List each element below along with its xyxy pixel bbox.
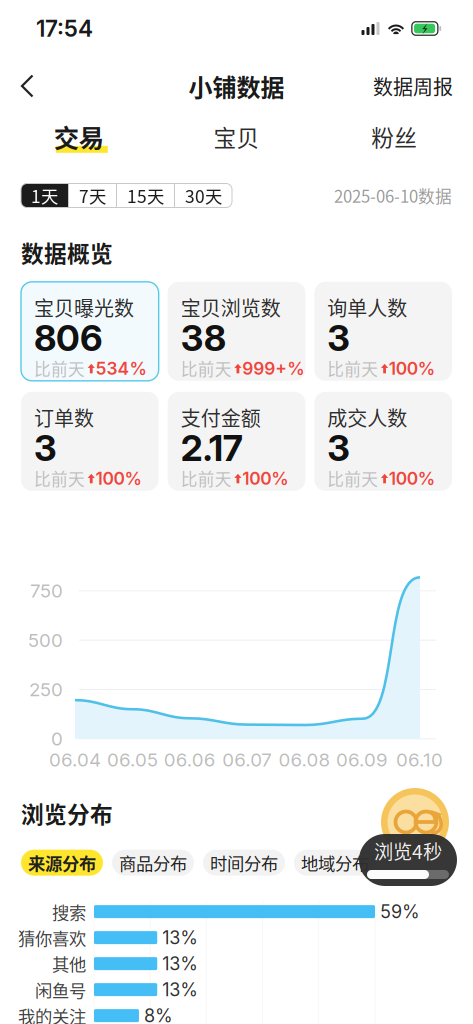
staticText: 13% (162, 953, 198, 975)
staticText: 13% (162, 927, 198, 949)
staticText: 小铺数据 (188, 69, 284, 103)
staticText: 100% (242, 468, 288, 489)
staticText: 06.09 (336, 748, 388, 771)
staticText: 534% (95, 358, 146, 379)
button[interactable]: 7天 (69, 183, 116, 207)
staticText: 询单人数 (327, 293, 407, 322)
button[interactable]: 返回 (0, 65, 51, 107)
staticText: 17:54 (36, 15, 93, 42)
staticText: 06.04 (49, 748, 101, 771)
staticText: 浏览分布 (21, 797, 113, 830)
button[interactable]: 15天 (117, 183, 174, 207)
staticText: 我的关注 (18, 1003, 86, 1024)
staticText: 宝贝浏览数 (181, 293, 281, 322)
staticText: 06.05 (107, 748, 158, 771)
staticText: 2025-06-10数据 (334, 183, 452, 207)
button[interactable]: 地域分布 (294, 850, 376, 876)
staticText: 成交人数 (327, 403, 407, 432)
staticText: 06.07 (222, 748, 272, 771)
staticText: 商品分布 (119, 850, 187, 875)
staticText: 1天 (31, 183, 58, 208)
staticText: 100% (389, 468, 435, 489)
staticText: 支付金额 (181, 403, 261, 432)
staticText: 比前天 (181, 466, 232, 490)
button[interactable]: 1天 (21, 183, 68, 207)
button[interactable]: 粉丝 (315, 115, 473, 173)
staticText: 来源分布 (28, 850, 96, 875)
button[interactable]: 商品分布 (112, 850, 194, 876)
staticText: 宝贝 (213, 120, 259, 153)
button[interactable]: 时间分布 (203, 850, 285, 876)
staticText: 806 (34, 316, 103, 360)
staticText: 订单数 (34, 403, 94, 432)
staticText: 搜索 (52, 899, 86, 924)
staticText: 数据周报 (373, 71, 453, 100)
staticText: 地域分布 (301, 850, 369, 875)
button[interactable]: 订单数 (21, 392, 159, 491)
staticText: 浏览4秒 (374, 836, 442, 864)
staticText: 3 (327, 426, 350, 470)
button[interactable]: 数据周报 (361, 61, 473, 110)
staticText: 0 (51, 727, 63, 750)
staticText: 7天 (79, 183, 106, 208)
staticText: 其他 (52, 951, 86, 976)
button[interactable]: 宝贝浏览数 (168, 282, 305, 381)
staticText: 3 (34, 426, 57, 470)
button[interactable]: 30天 (175, 183, 232, 207)
staticText: 粉丝 (371, 120, 417, 153)
staticText: 750 (30, 579, 63, 602)
staticText: 06.08 (279, 748, 331, 771)
staticText: 100% (95, 468, 141, 489)
staticText: 13% (162, 979, 198, 1001)
staticText: 100% (389, 358, 435, 379)
button[interactable]: 宝贝 (158, 115, 315, 173)
staticText: 59% (380, 901, 420, 923)
staticText: 比前天 (181, 356, 232, 380)
button[interactable]: 询单人数 (314, 282, 452, 381)
staticText: 3 (327, 316, 350, 360)
staticText: 时间分布 (210, 850, 278, 875)
staticText: 06.10 (396, 748, 443, 771)
staticText: 15天 (127, 183, 164, 208)
button[interactable]: 来源分布 (21, 850, 103, 876)
button[interactable]: 成交人数 (314, 392, 452, 491)
staticText: 数据概览 (21, 236, 113, 269)
staticText: 闲鱼号 (35, 977, 86, 1002)
staticText: 30天 (185, 183, 222, 208)
staticText: 比前天 (34, 466, 85, 490)
staticText: 8% (144, 1005, 173, 1024)
button[interactable]: 宝贝曝光数 (21, 282, 159, 381)
staticText: 500 (28, 629, 63, 651)
staticText: 250 (29, 678, 63, 701)
staticText: 2.17 (181, 426, 243, 470)
staticText: 比前天 (327, 466, 378, 490)
staticText: 06.06 (164, 748, 216, 771)
staticText: 宝贝曝光数 (34, 293, 134, 322)
button[interactable]: 交易 (0, 115, 158, 173)
staticText: 猜你喜欢 (18, 925, 86, 950)
staticText: 999+% (242, 358, 304, 379)
staticText: 比前天 (327, 356, 378, 380)
staticText: 38 (181, 316, 226, 360)
button[interactable]: 支付金额 (168, 392, 305, 491)
staticText: 交易 (54, 118, 104, 155)
staticText: 比前天 (34, 356, 85, 380)
